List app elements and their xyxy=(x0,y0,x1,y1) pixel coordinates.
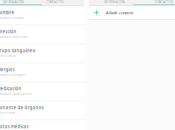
button[interactable]: Nombre xyxy=(0,6,84,25)
staticText: Introducir nombre xyxy=(0,16,24,20)
staticText: Donante de órganos xyxy=(0,104,43,111)
staticText: Seleccionar xyxy=(0,54,15,58)
staticText: INFORMACIÓN xyxy=(103,0,124,4)
button[interactable]: Alergias xyxy=(0,63,84,82)
button[interactable]: Añadir contacto xyxy=(89,6,175,19)
staticText: Seleccionar xyxy=(0,111,15,115)
staticText: CONTACTOS xyxy=(46,0,64,4)
staticText: INFORMACIÓN xyxy=(2,0,23,4)
staticText: Dirección xyxy=(0,28,16,35)
button[interactable]: INFORMACIÓN xyxy=(89,0,139,4)
button[interactable]: INFORMACIÓN xyxy=(0,0,34,4)
staticText: CONTACTOS xyxy=(155,0,173,4)
button[interactable]: Grupo sanguíneo xyxy=(0,44,84,63)
staticText: Introducir alergias xyxy=(0,73,25,77)
staticText: Nombre xyxy=(0,9,14,16)
staticText: Introducir dirección xyxy=(0,35,27,39)
staticText: Introducir medicación xyxy=(0,92,31,96)
button[interactable]: Dirección xyxy=(0,25,84,44)
button[interactable]: CONTACTOS xyxy=(139,0,175,4)
button[interactable]: Medicación xyxy=(0,82,84,101)
staticText: Alergias xyxy=(0,66,14,73)
button[interactable]: CONTACTOS xyxy=(34,0,76,4)
staticText: Medicación xyxy=(0,85,21,92)
button[interactable]: Donante de órganos xyxy=(0,101,84,120)
button[interactable]: Notas médicas xyxy=(0,120,84,130)
staticText: Grupo sanguíneo xyxy=(0,47,35,54)
staticText: Notas médicas xyxy=(0,123,28,130)
staticText: Añadir contacto xyxy=(106,10,133,15)
